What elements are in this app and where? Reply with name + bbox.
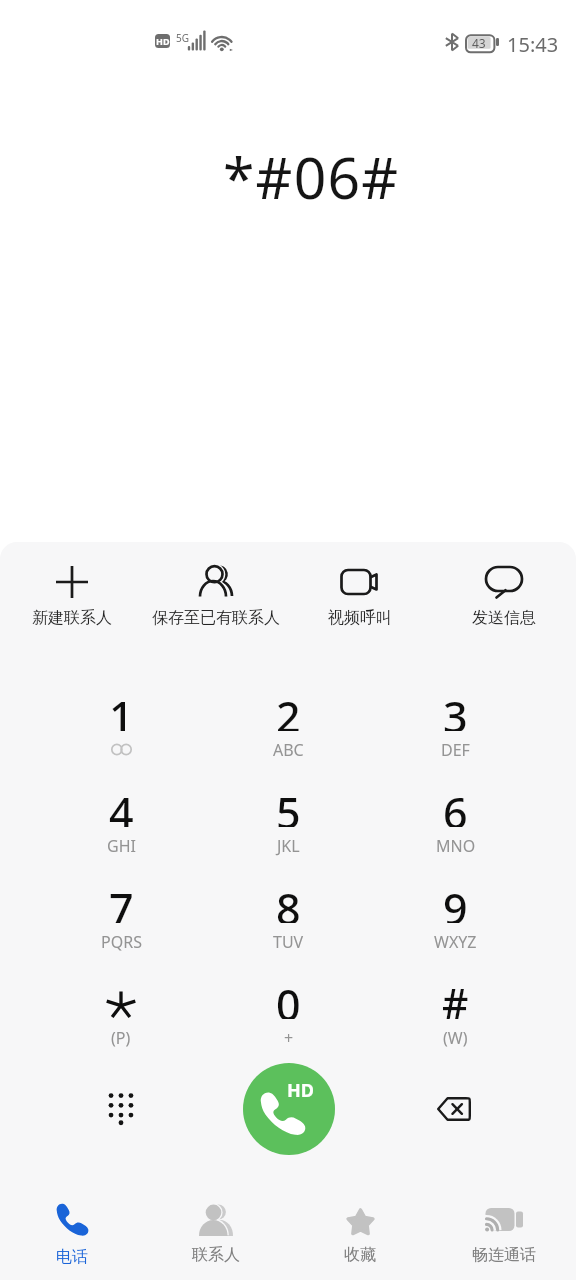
button[interactable]: 视频呼叫 <box>288 542 432 632</box>
staticText: 4 <box>109 783 134 827</box>
staticText: 2 <box>276 687 301 731</box>
staticText: 5G <box>176 31 189 45</box>
button[interactable]: 0 <box>205 975 372 1071</box>
staticText: WXYZ <box>434 931 477 953</box>
staticText: 电话 <box>56 1247 88 1267</box>
staticText: ABC <box>273 739 304 761</box>
button[interactable]: 9 <box>372 879 539 975</box>
button[interactable]: 新建联系人 <box>0 542 144 632</box>
button[interactable]: 电话 <box>0 1188 144 1280</box>
button[interactable]: 1 <box>37 687 205 783</box>
staticText: 保存至已有联系人 <box>152 608 280 628</box>
staticText: 视频呼叫 <box>328 608 392 628</box>
button[interactable]: Delete <box>405 1061 501 1157</box>
staticText: JKL <box>277 835 300 857</box>
button[interactable]: 保存至已有联系人 <box>144 542 288 632</box>
staticText: # <box>442 975 469 1019</box>
staticText: 新建联系人 <box>32 608 112 628</box>
staticText: 畅连通话 <box>472 1245 536 1265</box>
button[interactable]: 7 <box>37 879 205 975</box>
staticText: 0 <box>276 975 301 1019</box>
staticText: 43 <box>472 35 486 51</box>
staticText: 8 <box>276 879 301 923</box>
staticText: 发送信息 <box>472 608 536 628</box>
staticText: 收藏 <box>344 1245 376 1265</box>
staticText: 3 <box>443 687 468 731</box>
button[interactable]: 收藏 <box>288 1188 432 1280</box>
staticText: 15:43 <box>507 31 559 58</box>
staticText: 5 <box>276 783 301 827</box>
button[interactable]: 4 <box>37 783 205 879</box>
button[interactable]: 发送信息 <box>432 542 576 632</box>
button[interactable]: Keypad <box>73 1061 169 1157</box>
button[interactable]: 8 <box>205 879 372 975</box>
button[interactable]: Call <box>234 1054 344 1164</box>
staticText: MNO <box>436 835 476 857</box>
staticText: 联系人 <box>192 1245 240 1265</box>
staticText: 7 <box>109 879 134 923</box>
staticText: *#06# <box>223 138 400 216</box>
button[interactable]: 2 <box>205 687 372 783</box>
staticText: (W) <box>443 1027 468 1049</box>
staticText: HD <box>156 35 170 47</box>
staticText: 1 <box>109 687 134 731</box>
staticText: HD <box>287 1078 314 1103</box>
staticText: (P) <box>111 1027 131 1049</box>
staticText: GHI <box>107 835 136 857</box>
button[interactable]: 畅连通话 <box>432 1188 576 1280</box>
button[interactable]: (P) <box>37 975 205 1071</box>
button[interactable]: # <box>372 975 539 1071</box>
staticText: + <box>284 1027 294 1049</box>
button[interactable]: 3 <box>372 687 539 783</box>
staticText: DEF <box>441 739 470 761</box>
staticText: TUV <box>273 931 304 953</box>
button[interactable]: 5 <box>205 783 372 879</box>
staticText: 9 <box>443 879 468 923</box>
button[interactable]: 联系人 <box>144 1188 288 1280</box>
button[interactable]: 6 <box>372 783 539 879</box>
staticText: PQRS <box>101 931 142 953</box>
staticText: 6 <box>443 783 468 827</box>
